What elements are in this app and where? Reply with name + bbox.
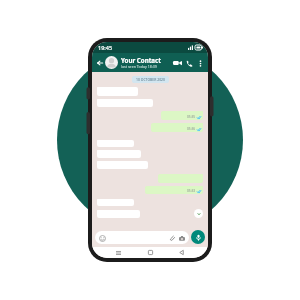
button[interactable] bbox=[105, 56, 118, 69]
button[interactable]: Call bbox=[183, 57, 195, 69]
staticText: 05:36 bbox=[187, 127, 196, 131]
button[interactable]: Video call bbox=[171, 57, 183, 69]
button[interactable]: Back bbox=[95, 58, 104, 67]
button[interactable]: Camera bbox=[178, 234, 186, 242]
button[interactable]: Attach bbox=[168, 234, 176, 242]
button[interactable]: Emoji bbox=[95, 231, 189, 244]
button[interactable]: Home bbox=[145, 247, 156, 258]
button[interactable]: 05:33 bbox=[145, 186, 203, 194]
button[interactable]: Back bbox=[176, 247, 187, 258]
staticText: 10 OCTOBER 2020 bbox=[136, 77, 165, 82]
button[interactable]: Voice message bbox=[191, 230, 205, 244]
staticText: 05:33 bbox=[187, 189, 196, 193]
staticText: last seen Today 18:39 bbox=[121, 64, 157, 69]
staticText: 05:35 bbox=[187, 115, 196, 119]
button[interactable]: Emoji bbox=[98, 234, 106, 242]
staticText: 19:45 bbox=[98, 44, 113, 51]
staticText: Your Contact bbox=[121, 56, 161, 64]
button[interactable]: More options bbox=[195, 58, 205, 68]
button[interactable]: Recents bbox=[113, 247, 124, 258]
button[interactable]: 05:36 bbox=[151, 123, 203, 132]
button[interactable]: 05:35 bbox=[161, 111, 203, 120]
button[interactable]: Scroll to bottom bbox=[194, 209, 203, 218]
